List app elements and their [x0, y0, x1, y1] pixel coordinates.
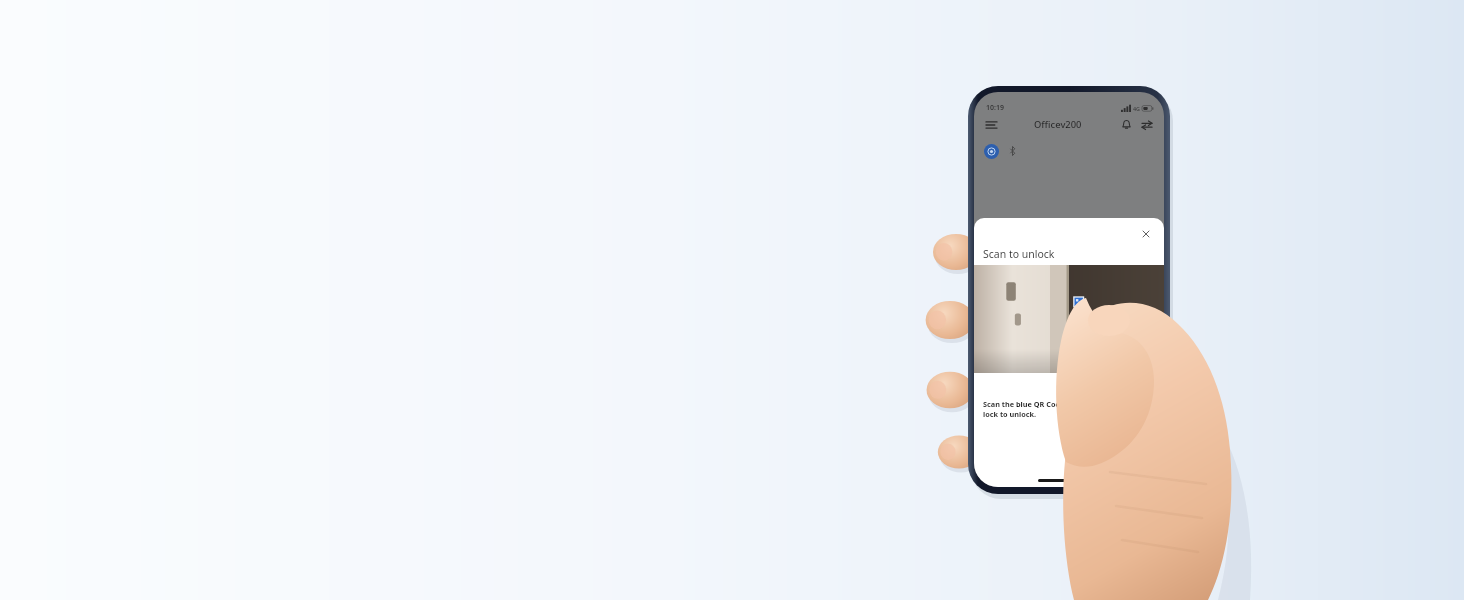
button[interactable]: Close — [1139, 227, 1152, 240]
staticText: Officev200 — [1034, 118, 1082, 131]
button[interactable]: Notifications — [1118, 116, 1135, 133]
staticText: 4G — [1133, 105, 1140, 112]
button[interactable]: Menu — [983, 117, 999, 133]
staticText: Scan to unlock — [983, 247, 1055, 261]
staticText: 10:19 — [986, 103, 1004, 113]
button[interactable]: Switch site — [1138, 116, 1155, 133]
button[interactable]: Bluetooth — [1005, 144, 1019, 158]
button[interactable]: Cloud status — [984, 144, 999, 159]
staticText: Scan the blue QR Code on the door lock t… — [983, 399, 1109, 419]
